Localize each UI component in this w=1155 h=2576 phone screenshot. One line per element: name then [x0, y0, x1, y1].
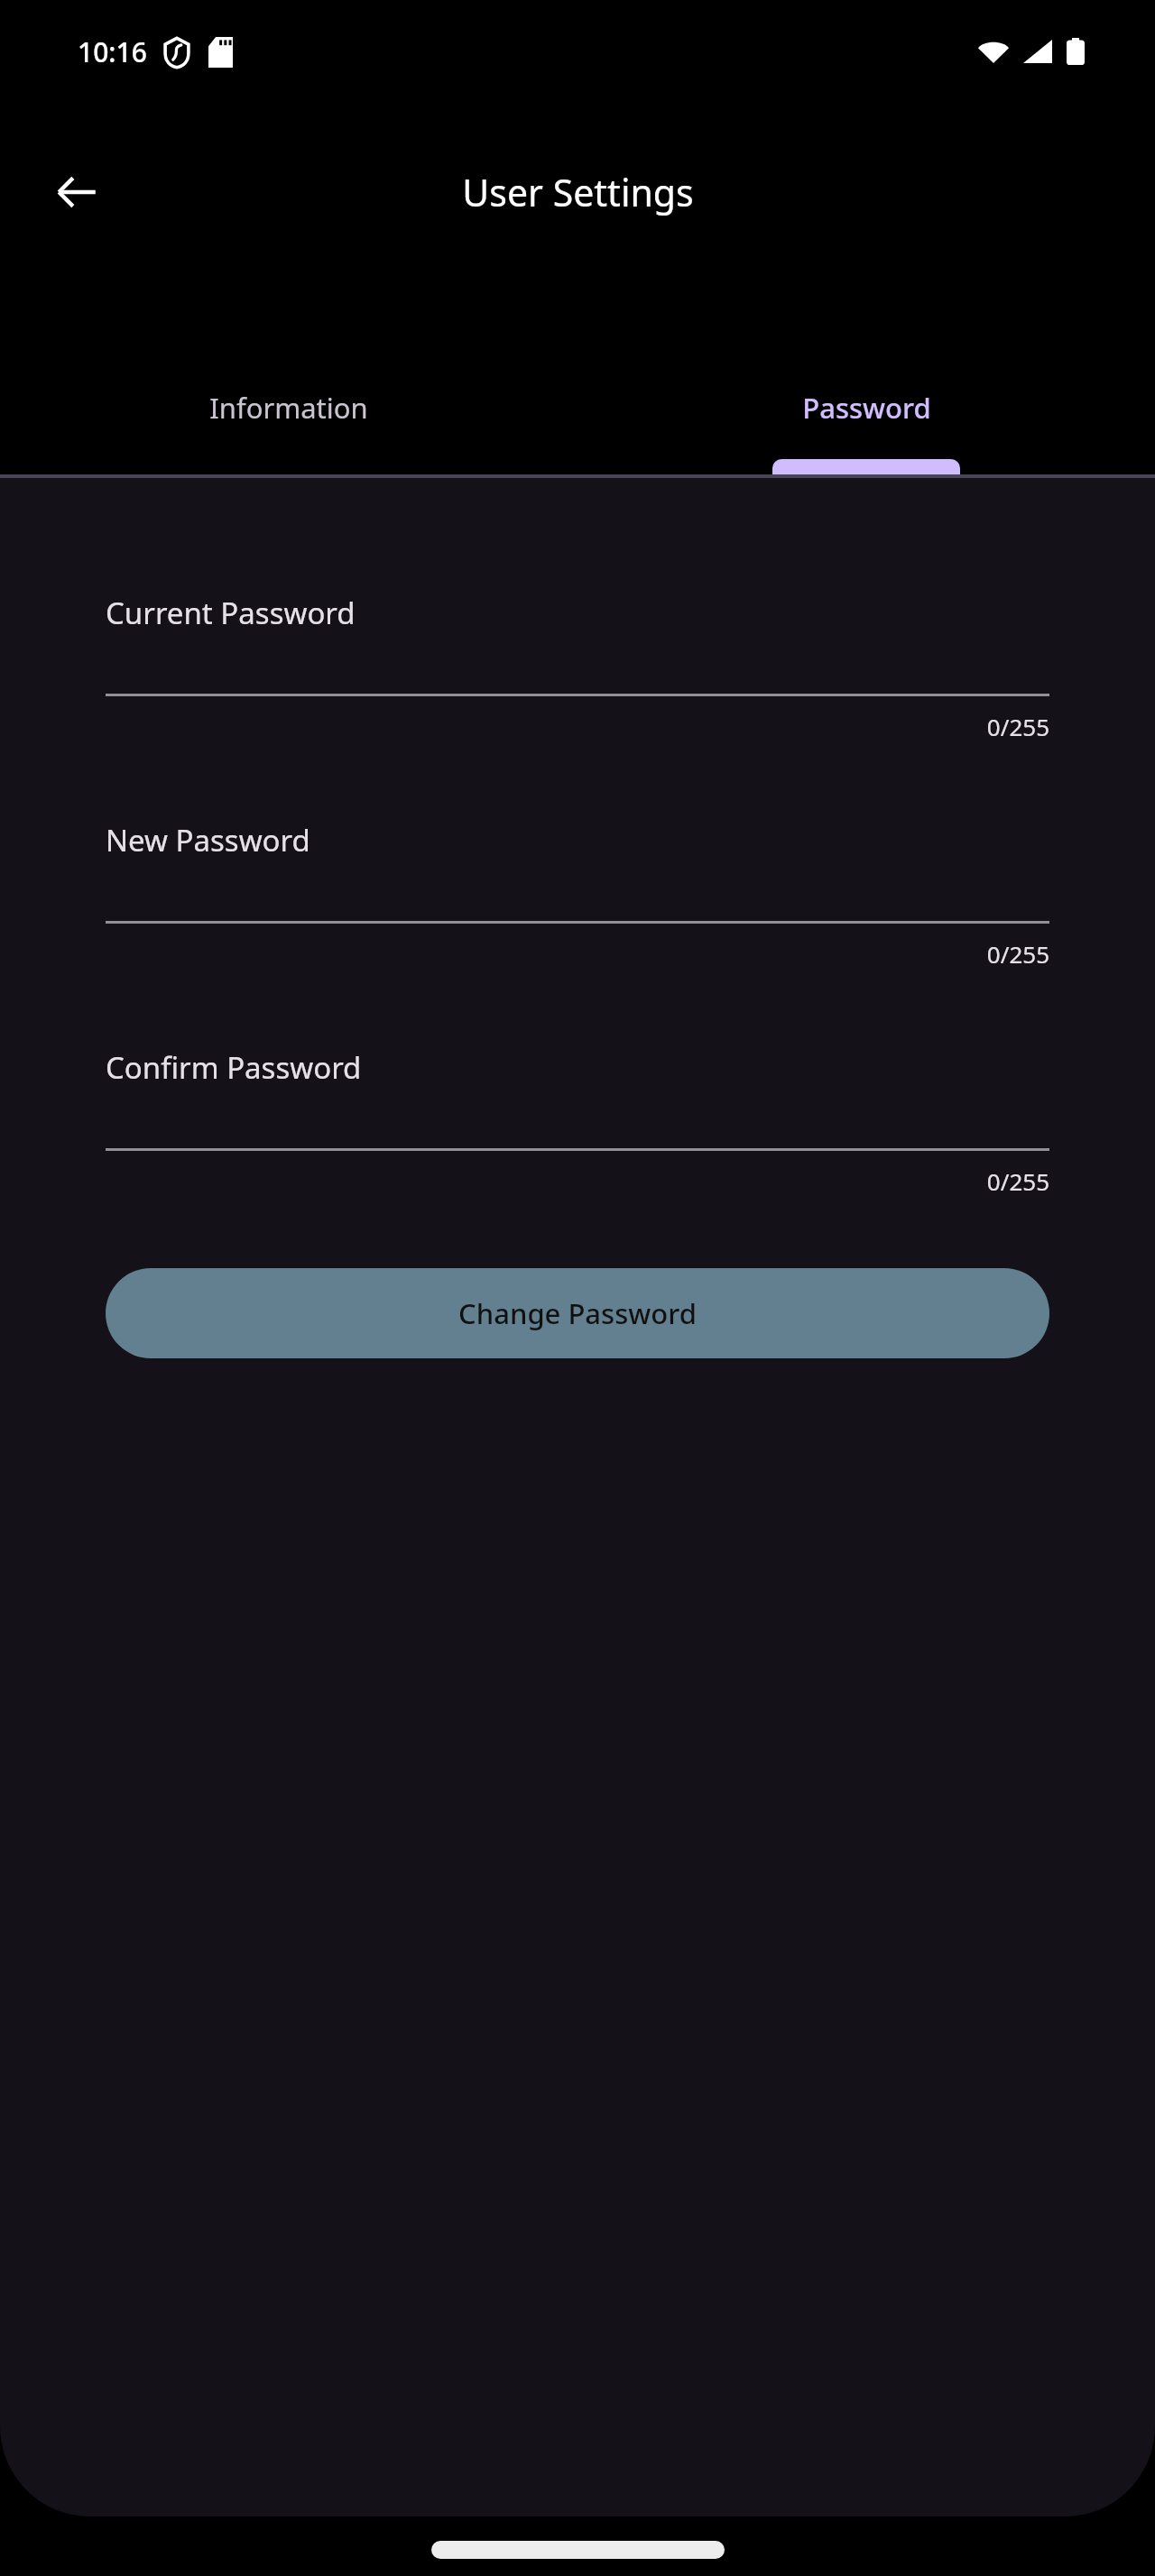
staticText: 0/255: [986, 711, 1049, 742]
staticText: 0/255: [986, 1165, 1049, 1197]
button[interactable]: Information: [0, 284, 577, 478]
staticText: Change Password: [458, 1294, 697, 1332]
staticText: 0/255: [986, 938, 1049, 970]
staticText: User Settings: [462, 167, 694, 217]
button[interactable]: Confirm Password: [106, 1047, 1049, 1197]
button[interactable]: Password: [577, 284, 1155, 478]
staticText: 10:16: [78, 33, 147, 70]
staticText: Information: [209, 389, 368, 427]
staticText: New Password: [106, 820, 310, 860]
button[interactable]: Change Password: [106, 1268, 1049, 1358]
button[interactable]: New Password: [106, 820, 1049, 970]
staticText: Password: [802, 389, 931, 427]
button[interactable]: Back: [33, 149, 120, 235]
button[interactable]: Current Password: [106, 593, 1049, 742]
staticText: Confirm Password: [106, 1047, 362, 1088]
staticText: Current Password: [106, 593, 356, 633]
